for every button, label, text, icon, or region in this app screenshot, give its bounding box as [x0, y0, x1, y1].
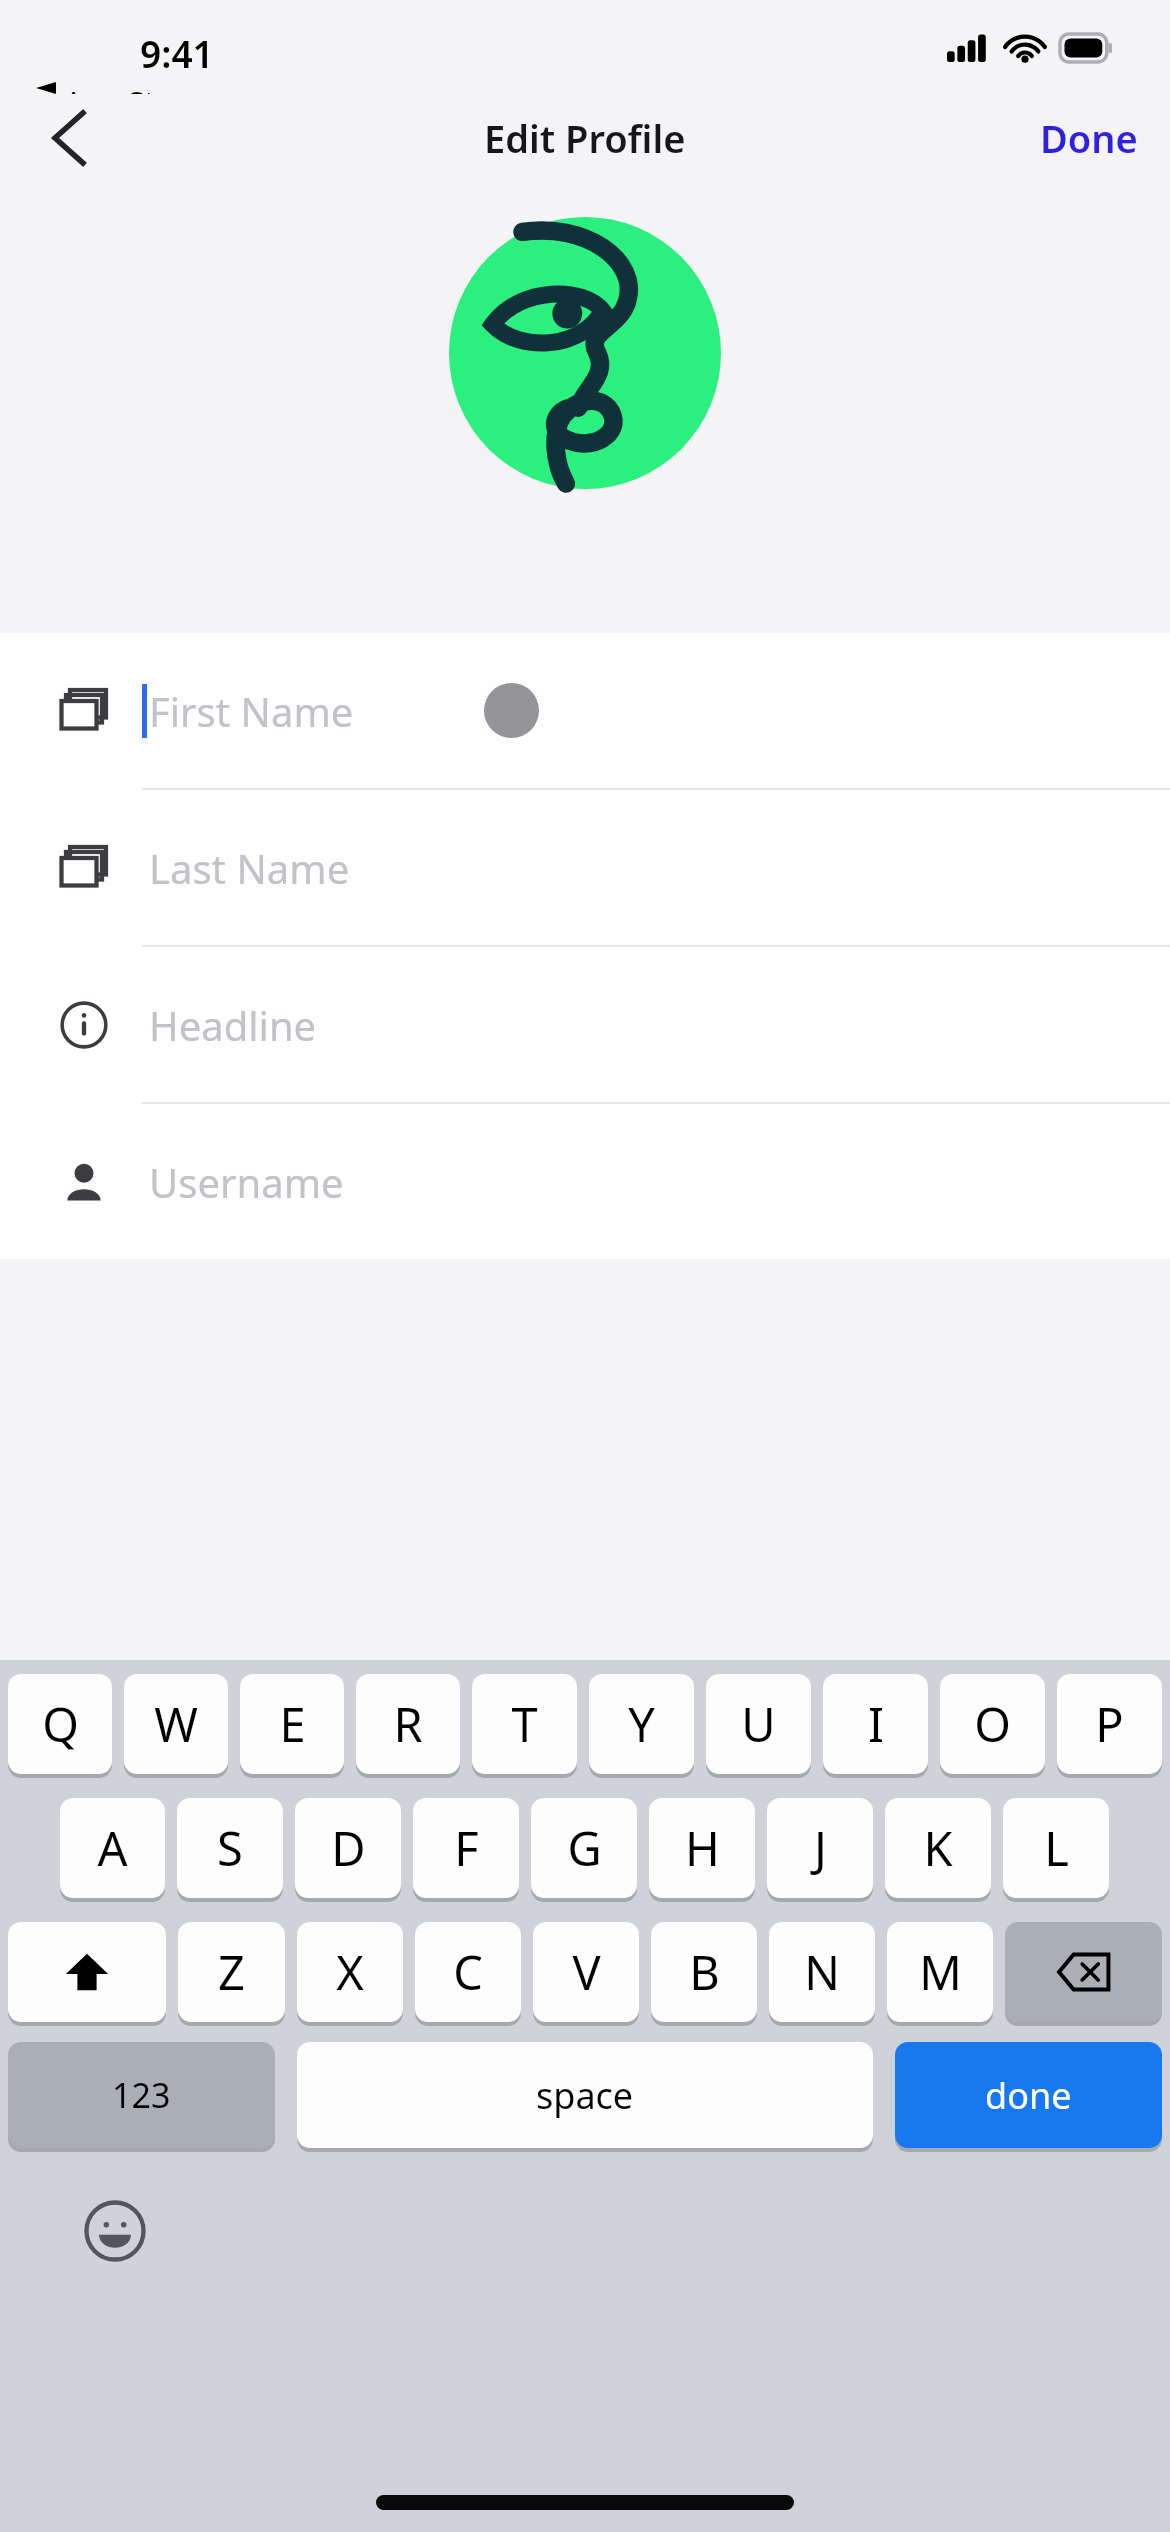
staticText: T	[511, 1692, 538, 1756]
staticText: P	[1095, 1692, 1124, 1756]
button[interactable]: M	[887, 1922, 993, 2026]
button[interactable]: S	[177, 1798, 283, 1902]
button[interactable]: Done	[1008, 98, 1170, 178]
staticText: U	[741, 1692, 776, 1756]
button[interactable]: U	[706, 1674, 811, 1778]
staticText: K	[923, 1816, 953, 1880]
button[interactable]: Back to App Store	[36, 82, 203, 94]
button[interactable]: O	[940, 1674, 1045, 1778]
staticText: M	[919, 1940, 962, 2004]
button[interactable]: R	[356, 1674, 460, 1778]
staticText: First Name	[149, 684, 354, 738]
staticText: H	[685, 1816, 720, 1880]
staticText: B	[689, 1940, 720, 2004]
staticText: 9:41	[140, 28, 214, 78]
button[interactable]: First Name	[0, 633, 1170, 788]
button[interactable]: J	[767, 1798, 873, 1902]
button[interactable]: Z	[178, 1922, 285, 2026]
button[interactable]: Y	[589, 1674, 694, 1778]
staticText: J	[814, 1816, 827, 1880]
button[interactable]: G	[531, 1798, 637, 1902]
button[interactable]: V	[533, 1922, 639, 2026]
staticText: V	[572, 1940, 601, 2004]
staticText: D	[331, 1816, 366, 1880]
button[interactable]: done	[895, 2042, 1162, 2152]
staticText: A	[97, 1816, 128, 1880]
staticText: Z	[218, 1940, 245, 2004]
staticText: Done	[1040, 112, 1138, 164]
button[interactable]: 123	[8, 2042, 275, 2152]
staticText: Edit Profile	[484, 112, 686, 164]
button[interactable]: A	[60, 1798, 165, 1902]
button[interactable]: Backspace	[1005, 1922, 1162, 2026]
staticText: W	[154, 1692, 198, 1756]
staticText: App Store	[64, 82, 203, 94]
staticText: Y	[628, 1692, 655, 1756]
staticText: L	[1044, 1816, 1069, 1880]
button[interactable]: Headline	[0, 947, 1170, 1102]
button[interactable]: C	[415, 1922, 521, 2026]
button[interactable]: Username	[0, 1104, 1170, 1259]
button[interactable]: N	[769, 1922, 875, 2026]
staticText: Username	[149, 1155, 344, 1209]
button[interactable]: Last Name	[0, 790, 1170, 945]
staticText: 123	[112, 2072, 171, 2118]
button[interactable]: Emoji keyboard	[80, 2196, 150, 2266]
button[interactable]: W	[124, 1674, 228, 1778]
staticText: done	[985, 2071, 1072, 2120]
staticText: F	[454, 1816, 479, 1880]
staticText: C	[453, 1940, 483, 2004]
button[interactable]: P	[1057, 1674, 1162, 1778]
button[interactable]: K	[885, 1798, 991, 1902]
button[interactable]: D	[295, 1798, 401, 1902]
button[interactable]: E	[240, 1674, 344, 1778]
staticText: O	[974, 1692, 1011, 1756]
button[interactable]: B	[651, 1922, 757, 2026]
button[interactable]: T	[472, 1674, 577, 1778]
staticText: I	[868, 1692, 884, 1756]
button[interactable]: space	[297, 2042, 873, 2152]
staticText: R	[393, 1692, 423, 1756]
staticText: Headline	[149, 998, 317, 1052]
staticText: N	[804, 1940, 840, 2004]
staticText: Last Name	[149, 841, 350, 895]
staticText: E	[279, 1692, 306, 1756]
button[interactable]: Shift	[8, 1922, 166, 2026]
button[interactable]: F	[413, 1798, 519, 1902]
button[interactable]: I	[823, 1674, 928, 1778]
button[interactable]: Back	[34, 103, 104, 173]
button[interactable]: Change profile photo	[449, 217, 721, 489]
staticText: S	[217, 1816, 243, 1880]
button[interactable]: H	[649, 1798, 755, 1902]
button[interactable]: X	[297, 1922, 403, 2026]
staticText: Q	[42, 1692, 79, 1756]
button[interactable]: L	[1003, 1798, 1109, 1902]
staticText: G	[567, 1816, 602, 1880]
staticText: X	[336, 1940, 364, 2004]
staticText: space	[536, 2071, 634, 2120]
button[interactable]: Q	[8, 1674, 112, 1778]
